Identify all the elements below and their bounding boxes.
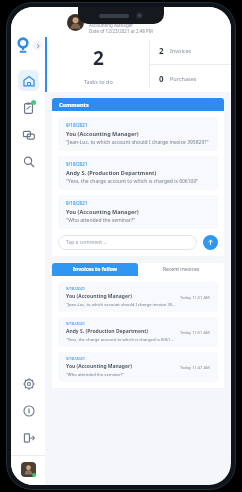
- button[interactable]: Invoices to follow: [52, 263, 138, 276]
- button[interactable]: 9/18/2021: [58, 282, 218, 312]
- staticText: Today 11:51 AM: [180, 330, 210, 335]
- staticText: 9/18/2021: [66, 356, 86, 361]
- staticText: Recent invoices: [163, 266, 200, 273]
- staticText: You (Accounting Manager): [66, 363, 132, 370]
- staticText: Andy S. (Production Department): [66, 328, 149, 335]
- button[interactable]: Expand menu: [33, 41, 42, 50]
- staticText: 9/18/2021: [66, 161, 88, 167]
- staticText: Today 11:47 AM: [180, 365, 210, 370]
- staticText: Tasks to do: [84, 78, 113, 85]
- staticText: Date of 12/23/2021 at 2:48 PM: [89, 28, 153, 34]
- button[interactable]: Search: [18, 151, 39, 172]
- button[interactable]: Home: [18, 70, 39, 91]
- button[interactable]: Profile: [21, 462, 36, 477]
- button[interactable]: 2: [150, 37, 231, 64]
- staticText: Invoices to follow: [73, 266, 117, 273]
- staticText: Accounting Manager: [89, 22, 134, 28]
- staticText: Thierry: [112, 11, 141, 22]
- staticText: 9/18/2021: [66, 321, 86, 326]
- button[interactable]: Tasks: [18, 97, 39, 118]
- staticText: 9/18/2021: [66, 122, 88, 128]
- button[interactable]: Messages: [18, 124, 39, 145]
- staticText: "Who attended the seminar?": [66, 372, 124, 378]
- button[interactable]: Log out: [18, 427, 39, 448]
- button[interactable]: 9/18/2021: [58, 195, 218, 229]
- staticText: 9/18/2021: [66, 200, 88, 206]
- other: Logo: [15, 37, 31, 53]
- staticText: You (Accounting Manager): [66, 130, 139, 137]
- staticText: Today 11:51 AM: [180, 295, 210, 300]
- staticText: "Jean-Luc, to which account should I cha…: [66, 139, 209, 146]
- button[interactable]: Send comment: [203, 235, 218, 250]
- button[interactable]: Settings: [18, 373, 39, 394]
- button[interactable]: Information: [18, 400, 39, 421]
- staticText: 9/18/2021: [66, 286, 86, 291]
- staticText: Purchases: [170, 75, 197, 82]
- staticText: 2: [93, 45, 104, 71]
- staticText: Hello: [89, 11, 112, 22]
- staticText: Invoices: [170, 47, 192, 54]
- staticText: Tap a comment ...: [66, 239, 108, 246]
- staticText: "Jean-Luc, to which account should I cha…: [66, 302, 176, 308]
- button[interactable]: Tap a comment ...: [58, 235, 197, 250]
- staticText: You (Accounting Manager): [66, 293, 132, 300]
- staticText: 2: [159, 45, 164, 56]
- staticText: Comments: [59, 101, 89, 108]
- button[interactable]: 9/18/2021: [58, 117, 218, 151]
- staticText: "Yess, the charge account to which is ch…: [66, 337, 176, 343]
- staticText: You (Accounting Manager): [66, 208, 139, 215]
- staticText: "Yess, the charge account to which is ch…: [66, 178, 199, 185]
- button[interactable]: 0: [150, 65, 231, 92]
- staticText: 0: [159, 73, 164, 84]
- button[interactable]: 9/18/2021: [58, 352, 218, 382]
- button[interactable]: 9/18/2021: [58, 156, 218, 190]
- button[interactable]: Recent invoices: [138, 263, 224, 276]
- staticText: Andy S. (Production Department): [66, 169, 157, 176]
- staticText: "Who attended the seminar?": [66, 217, 136, 224]
- button[interactable]: 9/18/2021: [58, 317, 218, 347]
